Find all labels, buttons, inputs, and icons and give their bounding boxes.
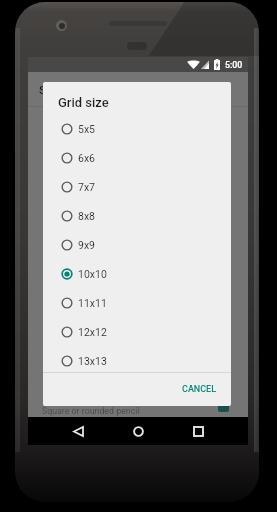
button[interactable]: 10x10 [43, 259, 231, 288]
button[interactable]: 12x12 [43, 317, 231, 346]
staticText: 10x10 [78, 268, 107, 280]
staticText: 5:00 [225, 60, 243, 70]
staticText: 9x9 [78, 239, 96, 251]
staticText: 12x12 [78, 326, 107, 338]
staticText: 11x11 [78, 297, 107, 309]
button[interactable]: 13x13 [43, 346, 231, 375]
staticText: 5x5 [78, 123, 96, 135]
button[interactable]: 5x5 [43, 114, 231, 143]
button[interactable]: Home [124, 417, 152, 445]
staticText: Settings [39, 83, 82, 96]
button[interactable]: 6x6 [43, 143, 231, 172]
staticText: 8x8 [78, 210, 96, 222]
staticText: Grid size [58, 95, 109, 110]
button[interactable]: 11x11 [43, 288, 231, 317]
staticText: 7x7 [78, 181, 96, 193]
staticText: 6x6 [78, 152, 96, 164]
button[interactable]: 7x7 [43, 172, 231, 201]
staticText: CANCEL [182, 384, 217, 395]
button[interactable]: 8x8 [43, 201, 231, 230]
button[interactable]: Back [64, 417, 92, 445]
button[interactable]: Recents [184, 417, 212, 445]
button[interactable]: 9x9 [43, 230, 231, 259]
button[interactable]: CANCEL [177, 380, 222, 399]
staticText: Square or rounded pencil [42, 406, 140, 416]
staticText: 13x13 [78, 355, 107, 367]
